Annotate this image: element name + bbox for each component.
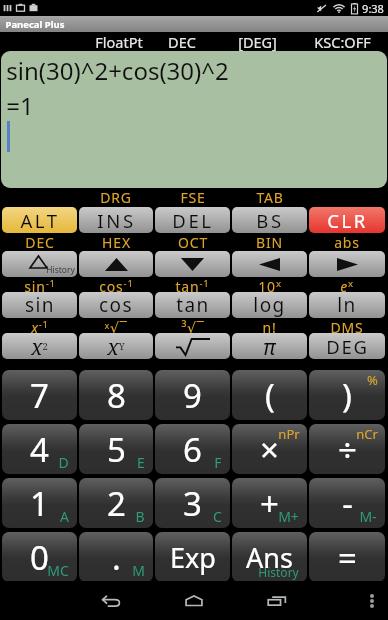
button[interactable]: (	[232, 370, 307, 420]
staticText: 1	[30, 481, 49, 526]
button[interactable]: Back	[87, 581, 135, 620]
staticText: MC	[47, 561, 69, 580]
button[interactable]: 3	[155, 478, 230, 528]
button[interactable]: 8	[79, 370, 153, 420]
staticText: 3	[183, 481, 202, 526]
staticText: 0	[30, 535, 49, 580]
staticText: B	[135, 507, 145, 526]
button[interactable]	[155, 251, 230, 277]
button[interactable]: 9	[155, 370, 230, 420]
staticText: .	[112, 535, 121, 580]
staticText: nCr	[356, 425, 378, 443]
button[interactable]: log	[232, 292, 307, 318]
button[interactable]	[232, 251, 307, 277]
staticText: History	[46, 264, 75, 276]
button[interactable]: [DEG]	[228, 32, 286, 51]
button[interactable]: FloatPt	[86, 32, 152, 51]
staticText: sin	[25, 292, 55, 318]
button[interactable]: 2	[79, 478, 153, 528]
button[interactable]: 1	[2, 478, 77, 528]
button[interactable]: +	[232, 478, 307, 528]
button[interactable]: ALT	[2, 207, 77, 233]
staticText: ³√‾	[181, 318, 205, 333]
button[interactable]: ÷	[309, 424, 385, 474]
button[interactable]: DEC	[156, 32, 208, 51]
button[interactable]: DEL	[155, 207, 230, 233]
staticText: log	[253, 292, 286, 318]
staticText: %	[367, 371, 378, 389]
staticText: F	[214, 453, 222, 472]
staticText: TAB	[256, 188, 284, 207]
staticText: ×	[260, 427, 279, 472]
staticText: 2	[107, 481, 126, 526]
staticText: =1	[6, 89, 34, 122]
staticText: ˣ√‾	[104, 318, 128, 333]
staticText: n!	[262, 318, 277, 333]
staticText: CLR	[327, 208, 368, 233]
staticText: 9	[183, 373, 202, 418]
staticText: sin(30)^2+cos(30)^2	[6, 54, 229, 87]
staticText: D	[58, 453, 69, 472]
staticText: 10x	[258, 277, 282, 292]
button[interactable]: History	[2, 251, 77, 277]
staticText: KSC:OFF	[314, 32, 371, 51]
button[interactable]: Home	[170, 581, 218, 620]
staticText: +	[260, 481, 279, 526]
staticText: nPr	[278, 425, 300, 443]
staticText: abs	[334, 233, 360, 251]
staticText: =	[338, 535, 357, 580]
button[interactable]: Exp	[155, 532, 230, 582]
button[interactable]: )	[309, 370, 385, 420]
staticText: x2	[31, 333, 48, 359]
button[interactable]: sin	[2, 292, 77, 318]
staticText: ex	[340, 277, 354, 292]
button[interactable]: ln	[309, 292, 385, 318]
button[interactable]	[79, 251, 153, 277]
button[interactable]: More options	[356, 581, 388, 620]
staticText: x-1	[31, 318, 49, 333]
staticText: 9:38	[362, 1, 384, 16]
staticText: xY	[107, 333, 125, 359]
button[interactable]: tan	[155, 292, 230, 318]
button[interactable]: -	[309, 478, 385, 528]
button[interactable]: 6	[155, 424, 230, 474]
button[interactable]	[309, 251, 385, 277]
button[interactable]: sin(30)^2+cos(30)^2	[1, 51, 387, 188]
staticText: ln	[337, 292, 357, 318]
staticText: BS	[256, 208, 284, 233]
staticText: FloatPt	[95, 32, 143, 51]
staticText: E	[137, 453, 145, 472]
staticText: A	[60, 507, 69, 526]
staticText: M-	[359, 507, 377, 526]
button[interactable]: cos	[79, 292, 153, 318]
button[interactable]: CLR	[309, 207, 385, 233]
button[interactable]: =	[309, 532, 385, 582]
staticText: OCT	[178, 233, 208, 251]
button[interactable]: INS	[79, 207, 153, 233]
staticText: DMS	[330, 318, 364, 333]
button[interactable]: .	[79, 532, 153, 582]
button[interactable]: π	[232, 333, 307, 359]
button[interactable]: 5	[79, 424, 153, 474]
button[interactable]: Recents	[253, 581, 301, 620]
button[interactable]: BS	[232, 207, 307, 233]
button[interactable]: KSC:OFF	[300, 32, 384, 51]
staticText: cos-1	[99, 277, 134, 292]
staticText: BIN	[256, 233, 283, 251]
button[interactable]: 4	[2, 424, 77, 474]
staticText: DEG	[326, 334, 369, 359]
button[interactable]: 0	[2, 532, 77, 582]
staticText: Ans	[246, 539, 293, 576]
button[interactable]: x2	[2, 333, 77, 359]
button[interactable]	[155, 333, 230, 359]
button[interactable]: 7	[2, 370, 77, 420]
staticText: 8	[107, 373, 126, 418]
staticText: cos	[99, 292, 133, 318]
staticText: C	[213, 507, 222, 526]
button[interactable]: Ans	[232, 532, 307, 582]
staticText: Exp	[170, 539, 216, 576]
button[interactable]: ×	[232, 424, 307, 474]
button[interactable]: DEG	[309, 333, 385, 359]
button[interactable]: xY	[79, 333, 153, 359]
staticText: (	[265, 373, 275, 418]
